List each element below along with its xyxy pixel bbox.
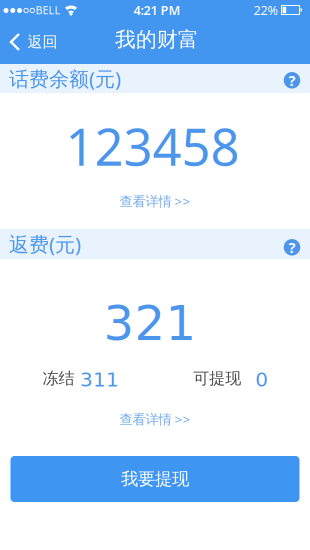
staticText: 4:21 PM xyxy=(133,1,180,19)
staticText: 311 xyxy=(80,368,119,391)
staticText: 我的财富 xyxy=(115,26,199,52)
button[interactable]: 查看详情 >> xyxy=(111,188,198,214)
staticText: 0 xyxy=(255,368,268,391)
button[interactable]: 返回 xyxy=(0,20,65,64)
staticText: 22% xyxy=(253,1,278,19)
button[interactable]: 查看详情 >> xyxy=(111,406,198,432)
button[interactable]: 帮助 xyxy=(280,68,304,92)
button[interactable]: 帮助 xyxy=(280,235,304,259)
staticText: BELL xyxy=(35,3,60,17)
staticText: 返费(元) xyxy=(9,230,81,258)
staticText: 可提现 xyxy=(193,368,241,389)
staticText: 冻结 xyxy=(42,368,74,389)
staticText: 查看详情 >> xyxy=(119,192,190,210)
staticText: ? xyxy=(288,70,295,90)
staticText: 返回 xyxy=(27,32,57,51)
staticText: 查看详情 >> xyxy=(119,410,190,428)
staticText: 我要提现 xyxy=(121,468,189,490)
staticText: 321 xyxy=(103,296,196,351)
button[interactable]: 我要提现 xyxy=(10,456,299,502)
staticText: ? xyxy=(288,237,295,257)
staticText: 话费余额(元) xyxy=(9,65,121,92)
staticText: 123458 xyxy=(65,111,239,180)
